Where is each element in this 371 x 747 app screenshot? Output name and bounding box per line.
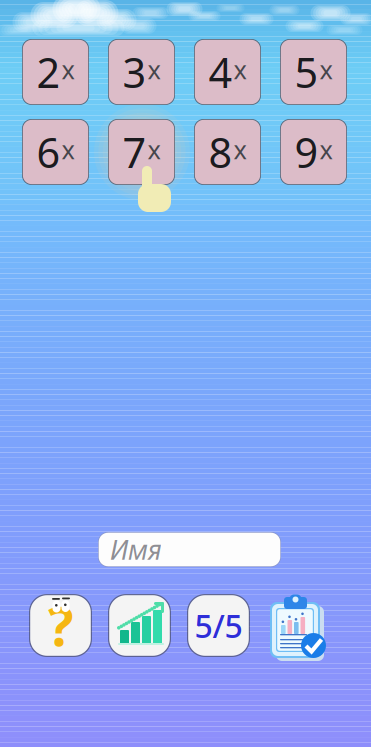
button[interactable]: 3 xyxy=(108,39,175,105)
button[interactable]: Results xyxy=(266,594,336,666)
staticText: 2 xyxy=(36,45,60,99)
button[interactable]: 6 xyxy=(22,119,89,185)
button[interactable]: Progress xyxy=(108,594,171,657)
staticText: 6 xyxy=(36,125,60,179)
button[interactable]: 2 xyxy=(22,39,89,105)
staticText: x xyxy=(61,133,74,166)
button[interactable]: 4 xyxy=(194,39,261,105)
button[interactable]: Имя xyxy=(98,532,281,567)
staticText: x xyxy=(233,133,246,166)
staticText: x xyxy=(319,133,332,166)
button[interactable]: 7 xyxy=(108,119,175,185)
staticText: Имя xyxy=(110,532,162,567)
staticText: 3 xyxy=(122,45,146,99)
button[interactable]: 9 xyxy=(280,119,347,185)
staticText: x xyxy=(147,133,160,166)
staticText: 4 xyxy=(208,45,232,99)
staticText: ? xyxy=(48,590,73,661)
staticText: x xyxy=(147,53,160,86)
button[interactable]: Help xyxy=(29,594,92,657)
staticText: 7 xyxy=(122,125,146,179)
staticText: 8 xyxy=(208,125,232,179)
staticText: x xyxy=(319,53,332,86)
staticText: 9 xyxy=(294,125,318,179)
staticText: x xyxy=(233,53,246,86)
staticText: 5/5 xyxy=(194,604,242,647)
staticText: x xyxy=(61,53,74,86)
button[interactable]: 5 xyxy=(280,39,347,105)
staticText: 5 xyxy=(294,45,318,99)
button[interactable]: 8 xyxy=(194,119,261,185)
button[interactable]: Score xyxy=(187,594,250,657)
